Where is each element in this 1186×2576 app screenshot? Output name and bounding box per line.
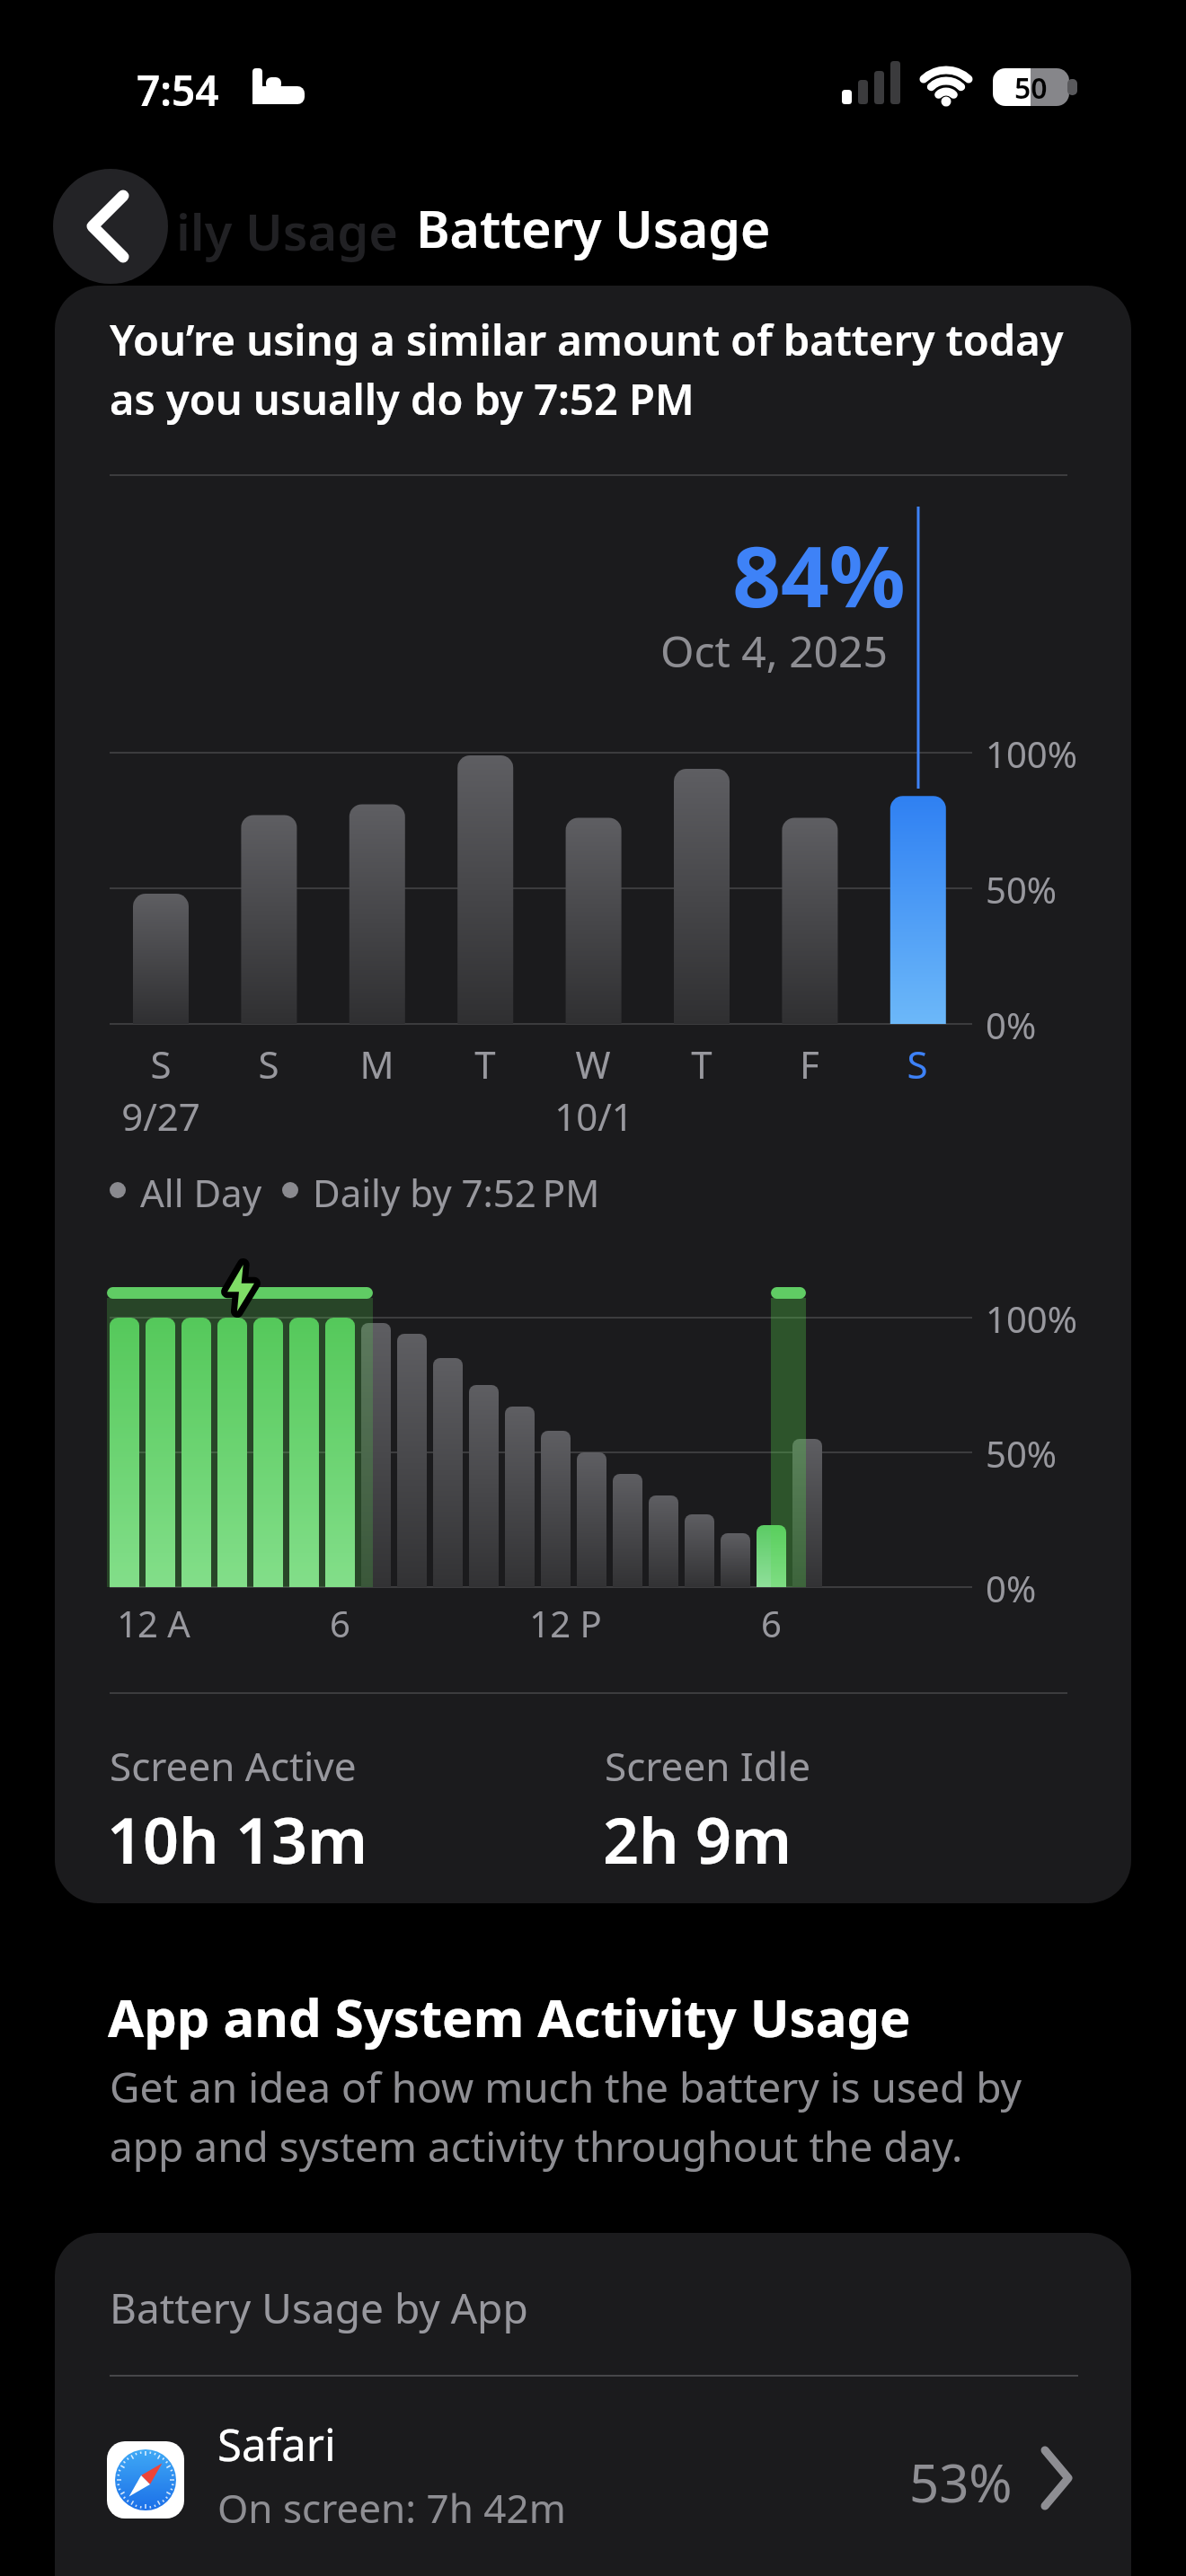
staticText: On screen: 7h 42m (217, 2481, 566, 2535)
staticText: 6 (330, 1599, 350, 1647)
staticText: 12 P (529, 1599, 602, 1647)
staticText: M (359, 1038, 394, 1090)
staticText: 6 (761, 1599, 782, 1647)
staticText: Oct 4, 2025 (660, 622, 888, 680)
staticText: 9/27 (121, 1090, 200, 1142)
button[interactable] (53, 169, 168, 284)
staticText: 12 A (117, 1599, 190, 1647)
staticText: You’re using a similar amount of battery… (110, 311, 1064, 428)
staticText: 100% (986, 1294, 1077, 1343)
staticText: Daily by 7:52 PM (313, 1167, 600, 1218)
staticText: 2h 9m (603, 1796, 792, 1882)
staticText: ily Usage (176, 197, 398, 265)
staticText: Safari (217, 2414, 336, 2475)
staticText: Screen Active (110, 1739, 357, 1793)
staticText: All Day (140, 1167, 262, 1218)
staticText: Battery Usage (416, 193, 771, 263)
staticText: 7:54 (137, 62, 219, 119)
staticText: Screen Idle (605, 1739, 810, 1793)
staticText: 10h 13m (107, 1796, 368, 1882)
staticText: W (575, 1038, 611, 1090)
staticText: 53% (909, 2447, 1013, 2510)
staticText: 10/1 (554, 1090, 633, 1142)
staticText: S (258, 1038, 279, 1090)
staticText: F (800, 1038, 819, 1090)
staticText: T (691, 1038, 712, 1090)
staticText: Get an idea of how much the battery is u… (110, 2059, 1022, 2174)
staticText: Battery Usage by App (110, 2280, 528, 2336)
staticText: 84% (732, 517, 906, 632)
staticText: 0% (986, 1564, 1037, 1612)
staticText: 0% (986, 1001, 1037, 1049)
staticText: 50% (986, 1429, 1057, 1478)
staticText: T (474, 1038, 496, 1090)
staticText: 100% (986, 729, 1077, 778)
staticText: 50 (1014, 68, 1048, 106)
staticText: S (150, 1038, 172, 1090)
button[interactable]: Safari (55, 2404, 1131, 2556)
staticText: S (907, 1038, 928, 1090)
staticText: App and System Activity Usage (108, 1981, 911, 2052)
staticText: 50% (986, 865, 1057, 913)
